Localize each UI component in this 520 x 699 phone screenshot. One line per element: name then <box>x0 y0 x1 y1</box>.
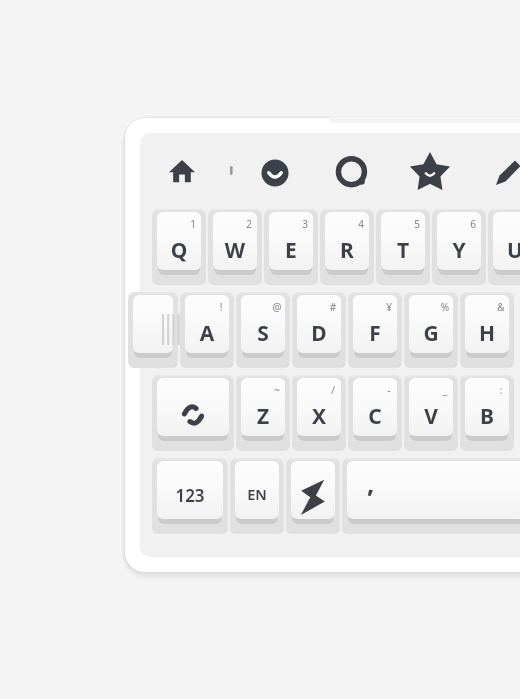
staticText: D <box>292 319 346 348</box>
staticText: 4 <box>352 217 370 231</box>
button[interactable]: % <box>404 292 458 368</box>
button[interactable]: Home <box>162 153 202 193</box>
staticText: @ <box>268 300 286 314</box>
button[interactable]: ¥ <box>348 292 402 368</box>
button[interactable]: ! <box>180 292 234 368</box>
button[interactable]: Search <box>333 153 373 193</box>
staticText: ! <box>212 300 230 314</box>
button[interactable]: _ <box>404 375 458 451</box>
staticText: % <box>436 300 454 314</box>
staticText: F <box>348 319 402 348</box>
staticText: Q <box>152 236 206 265</box>
staticText: S <box>236 319 290 348</box>
staticText: X <box>292 402 346 431</box>
button[interactable]: Shift <box>152 375 234 451</box>
staticText: 1 <box>184 217 202 231</box>
staticText: # <box>324 300 342 314</box>
button[interactable]: : <box>460 375 514 451</box>
staticText: V <box>404 402 458 431</box>
staticText: 5 <box>408 217 426 231</box>
staticText: H <box>460 319 514 348</box>
staticText: / <box>324 383 342 397</box>
button[interactable]: 4 <box>320 209 374 285</box>
staticText: & <box>492 300 510 314</box>
staticText: - <box>380 383 398 397</box>
staticText: Z <box>236 402 290 431</box>
staticText: ¥ <box>380 300 398 314</box>
staticText: B <box>460 402 514 431</box>
button[interactable]: EN <box>230 458 284 534</box>
staticText: 2 <box>240 217 258 231</box>
button[interactable]: 2 <box>208 209 262 285</box>
button[interactable]: Handwriting <box>488 153 520 193</box>
button[interactable]: Space <box>342 458 520 534</box>
button[interactable]: Caps lock <box>128 292 178 368</box>
staticText: _ <box>436 383 454 397</box>
button[interactable]: & <box>460 292 514 368</box>
staticText: C <box>348 402 402 431</box>
button[interactable]: 3 <box>264 209 318 285</box>
button[interactable]: @ <box>236 292 290 368</box>
button[interactable]: Favorites <box>410 153 450 193</box>
button[interactable]: / <box>292 375 346 451</box>
staticText: A <box>180 319 234 348</box>
button[interactable]: ~ <box>236 375 290 451</box>
button[interactable]: 7 <box>488 209 520 285</box>
staticText: U <box>488 236 520 265</box>
staticText: T <box>376 236 430 265</box>
button[interactable]: - <box>348 375 402 451</box>
button[interactable]: Emoji <box>255 153 295 193</box>
staticText: EN <box>230 484 284 504</box>
staticText: 6 <box>464 217 482 231</box>
staticText: E <box>264 236 318 265</box>
button[interactable]: 5 <box>376 209 430 285</box>
staticText: 3 <box>296 217 314 231</box>
staticText: : <box>492 383 510 397</box>
staticText: 123 <box>152 484 228 507</box>
button[interactable]: 6 <box>432 209 486 285</box>
button[interactable]: Emoji <box>286 458 340 534</box>
button[interactable]: # <box>292 292 346 368</box>
staticText: R <box>320 236 374 265</box>
button[interactable]: Voice input <box>211 153 251 193</box>
button[interactable]: 1 <box>152 209 206 285</box>
staticText: ~ <box>268 383 286 397</box>
staticText: W <box>208 236 262 265</box>
button[interactable]: 123 <box>152 458 228 534</box>
staticText: Y <box>432 236 486 265</box>
staticText: G <box>404 319 458 348</box>
